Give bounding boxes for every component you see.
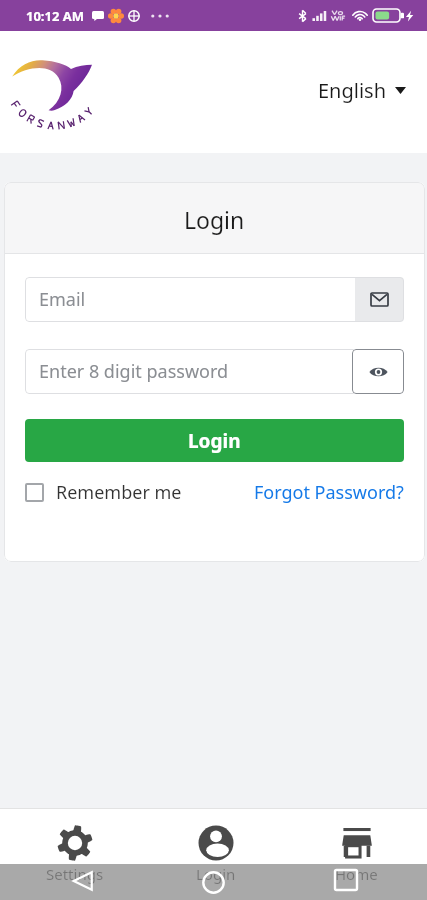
button[interactable]: Forgot Password? bbox=[254, 480, 404, 505]
staticText: English bbox=[318, 77, 387, 104]
button[interactable]: Email bbox=[25, 277, 404, 322]
button[interactable]: Home bbox=[286, 809, 427, 900]
button[interactable]: Enter 8 digit password bbox=[25, 349, 404, 394]
staticText: Login bbox=[196, 864, 236, 884]
button[interactable]: Login bbox=[145, 809, 286, 900]
button[interactable]: Home bbox=[202, 871, 225, 894]
staticText: Email bbox=[39, 287, 86, 312]
staticText: Login bbox=[188, 428, 241, 454]
other: Email bbox=[355, 277, 404, 322]
staticText: Login bbox=[184, 204, 245, 235]
button[interactable]: Login bbox=[25, 419, 404, 462]
staticText: Enter 8 digit password bbox=[39, 359, 229, 384]
button[interactable]: Recent apps bbox=[335, 870, 357, 890]
staticText: 10:12 AM bbox=[26, 7, 85, 25]
button[interactable]: Settings bbox=[5, 809, 145, 900]
staticText: Home bbox=[335, 864, 378, 884]
button[interactable]: English bbox=[311, 70, 413, 111]
button[interactable]: Show password bbox=[352, 349, 404, 394]
staticText: Remember me bbox=[56, 480, 182, 505]
staticText: Settings bbox=[46, 864, 104, 884]
button[interactable]: Remember me bbox=[25, 480, 182, 505]
button[interactable]: Back bbox=[72, 871, 93, 891]
